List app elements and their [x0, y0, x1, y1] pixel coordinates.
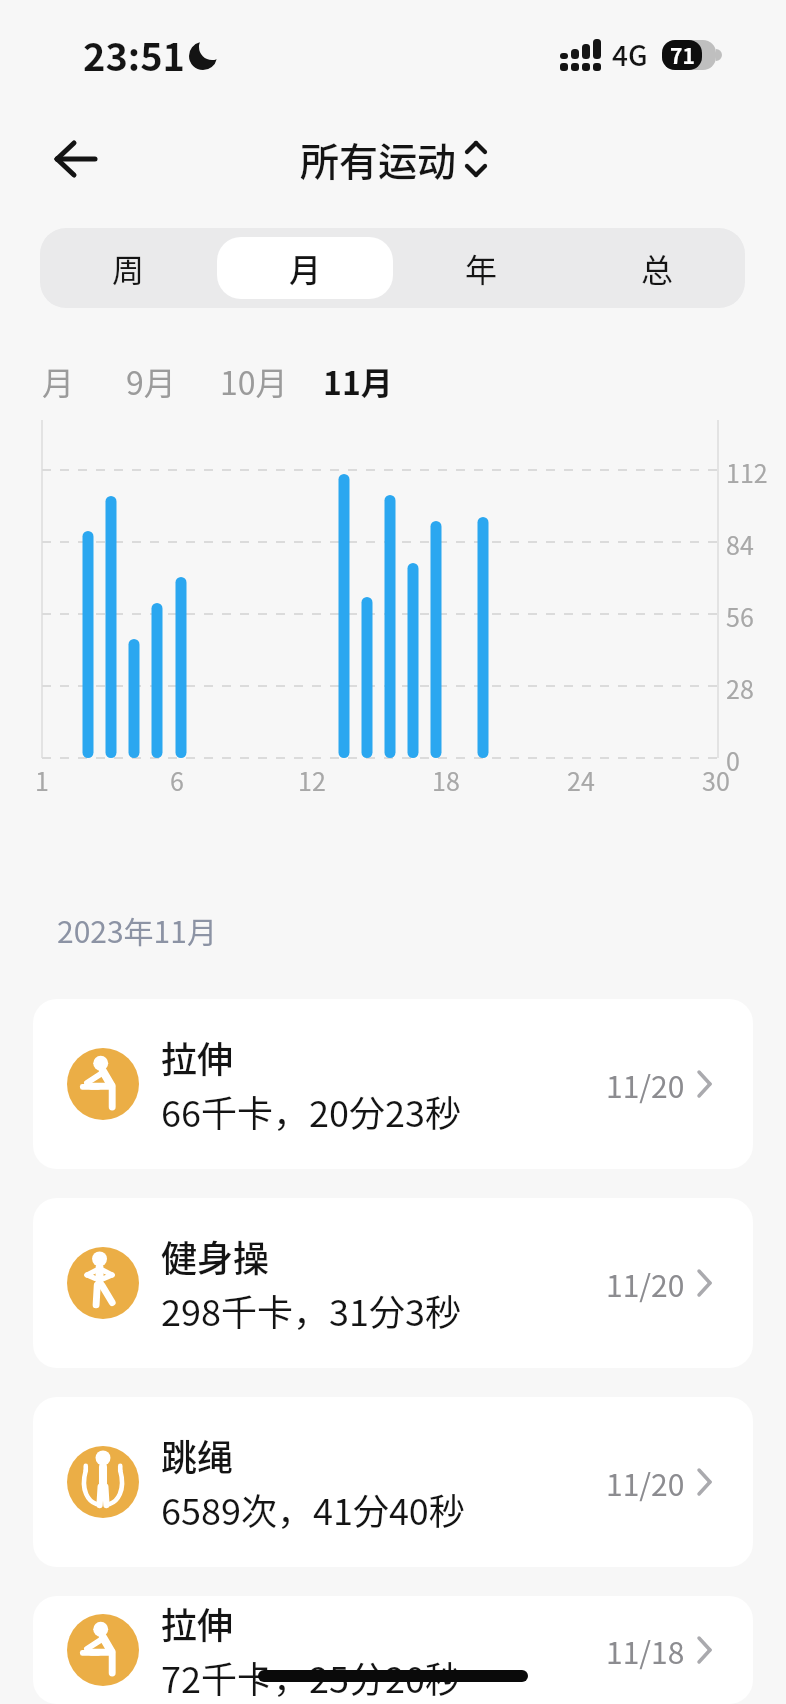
staticText: 12: [298, 762, 326, 798]
staticText: 11/18: [606, 1629, 685, 1672]
button[interactable]: 月: [217, 237, 393, 299]
staticText: 56: [726, 598, 754, 634]
staticText: 11/20: [606, 1262, 685, 1305]
button[interactable]: [55, 140, 97, 178]
staticText: 24: [567, 762, 595, 798]
button[interactable]: 总: [569, 228, 745, 308]
staticText: 23:51: [83, 27, 186, 82]
staticText: 112: [726, 454, 768, 490]
button[interactable]: 月: [42, 358, 75, 404]
staticText: 健身操: [161, 1230, 270, 1282]
button[interactable]: 拉伸: [33, 1596, 753, 1704]
staticText: 72千卡，25分20秒: [161, 1651, 461, 1703]
button[interactable]: 9月: [126, 358, 176, 404]
button[interactable]: 年: [393, 228, 569, 308]
staticText: 298千卡，31分3秒: [161, 1284, 461, 1336]
staticText: 所有运动: [300, 131, 457, 187]
staticText: 2023年11月: [57, 908, 217, 951]
button[interactable]: 所有运动: [300, 131, 487, 187]
staticText: 跳绳: [161, 1429, 234, 1481]
staticText: 6589次，41分40秒: [161, 1483, 465, 1535]
staticText: 0: [726, 742, 740, 778]
staticText: 1: [35, 762, 49, 798]
staticText: 28: [726, 670, 754, 706]
staticText: 66千卡，20分23秒: [161, 1085, 461, 1137]
button[interactable]: 周: [40, 228, 217, 308]
staticText: 拉伸: [161, 1031, 234, 1083]
button[interactable]: 健身操: [33, 1198, 753, 1368]
staticText: 周: [112, 245, 145, 291]
staticText: 11/20: [606, 1063, 685, 1106]
staticText: 84: [726, 526, 754, 562]
staticText: 年: [465, 245, 498, 291]
button[interactable]: 跳绳: [33, 1397, 753, 1567]
staticText: 71: [670, 40, 695, 70]
staticText: 11/20: [606, 1461, 685, 1504]
staticText: 月: [289, 245, 322, 291]
staticText: 4G: [612, 34, 648, 75]
staticText: 18: [432, 762, 460, 798]
button[interactable]: 11月: [323, 358, 393, 404]
button[interactable]: 拉伸: [33, 999, 753, 1169]
staticText: 拉伸: [161, 1597, 234, 1649]
button[interactable]: 10月: [220, 358, 288, 404]
staticText: 6: [170, 762, 184, 798]
staticText: 总: [641, 245, 674, 291]
staticText: 30: [702, 762, 730, 798]
